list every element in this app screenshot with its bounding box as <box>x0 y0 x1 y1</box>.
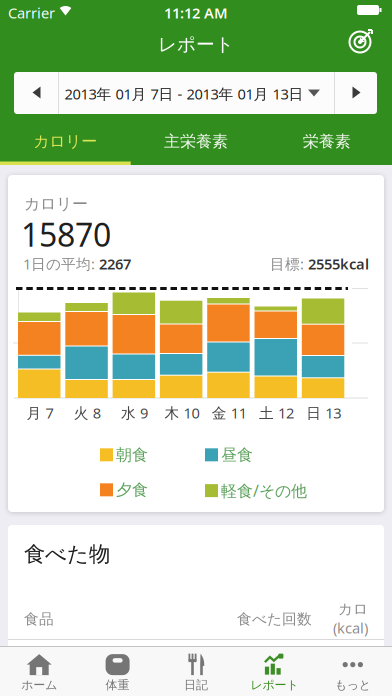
staticText: 食べた物 <box>24 541 110 567</box>
staticText: 昼食 <box>221 445 253 465</box>
staticText: 軽食/その他 <box>221 480 307 501</box>
staticText: 夕食 <box>116 480 148 500</box>
staticText: 日 13 <box>306 403 341 422</box>
button[interactable]: もっと <box>314 646 392 696</box>
button[interactable]: レポート <box>235 646 314 696</box>
staticText: 食べた回数 <box>237 610 312 628</box>
staticText: 朝食 <box>116 445 148 465</box>
staticText: カロリー <box>24 194 88 214</box>
staticText: 2013年 01月 7日 - 2013年 01月 13日 <box>64 84 303 103</box>
staticText: もっと <box>335 678 371 692</box>
button[interactable]: 2013年 01月 7日 - 2013年 01月 13日 <box>58 72 334 114</box>
staticText: 目標: <box>270 254 304 273</box>
staticText: 木 10 <box>164 403 199 422</box>
staticText: 金 11 <box>212 403 247 422</box>
staticText: 栄養素 <box>303 132 351 151</box>
staticText: 水 9 <box>121 403 148 422</box>
staticText: 体重 <box>106 678 130 692</box>
button[interactable] <box>14 72 58 114</box>
staticText: 日記 <box>184 678 208 692</box>
button[interactable] <box>346 26 376 56</box>
button[interactable]: ホーム <box>0 646 78 696</box>
staticText: レポート <box>250 678 298 692</box>
staticText: Carrier <box>8 3 55 22</box>
staticText: 1日の平均: <box>23 254 95 273</box>
button[interactable]: カロリー <box>0 122 131 161</box>
staticText: カロ <box>338 600 368 618</box>
staticText: 食品 <box>24 610 54 628</box>
staticText: (kcal) <box>333 618 368 637</box>
staticText: 2267 <box>99 254 131 273</box>
staticText: 主栄養素 <box>164 132 228 151</box>
staticText: 月 7 <box>26 403 53 422</box>
staticText: 15870 <box>21 213 111 255</box>
staticText: 11:12 AM <box>164 3 228 22</box>
button[interactable]: 主栄養素 <box>131 122 261 161</box>
staticText: ホーム <box>21 678 57 692</box>
staticText: 土 12 <box>259 403 294 422</box>
button[interactable]: 栄養素 <box>261 122 392 161</box>
staticText: 2555kcal <box>308 254 369 273</box>
button[interactable]: 体重 <box>78 646 157 696</box>
button[interactable]: 日記 <box>157 646 235 696</box>
staticText: 火 8 <box>74 403 101 422</box>
button[interactable] <box>334 72 377 114</box>
staticText: カロリー <box>33 132 97 151</box>
staticText: レポート <box>158 33 234 56</box>
